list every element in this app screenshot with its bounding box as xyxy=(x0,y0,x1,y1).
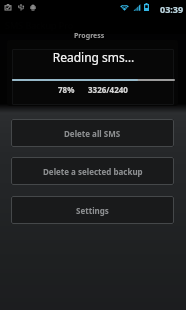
button[interactable]: Delete all SMS xyxy=(11,119,174,147)
staticText: 78% xyxy=(58,84,75,95)
staticText: Restore backup xyxy=(0,95,186,106)
staticText: Delete a selected backup xyxy=(43,166,143,177)
staticText: 03:39 xyxy=(160,3,184,15)
staticText: 3326/4240 xyxy=(88,84,128,95)
button[interactable]: Settings xyxy=(11,196,174,224)
staticText: Delete all SMS xyxy=(64,128,121,139)
staticText: Reading sms… xyxy=(8,49,178,65)
staticText: Progress xyxy=(74,31,105,41)
button[interactable]: Delete a selected backup xyxy=(11,157,174,185)
staticText: Settings xyxy=(76,205,109,216)
